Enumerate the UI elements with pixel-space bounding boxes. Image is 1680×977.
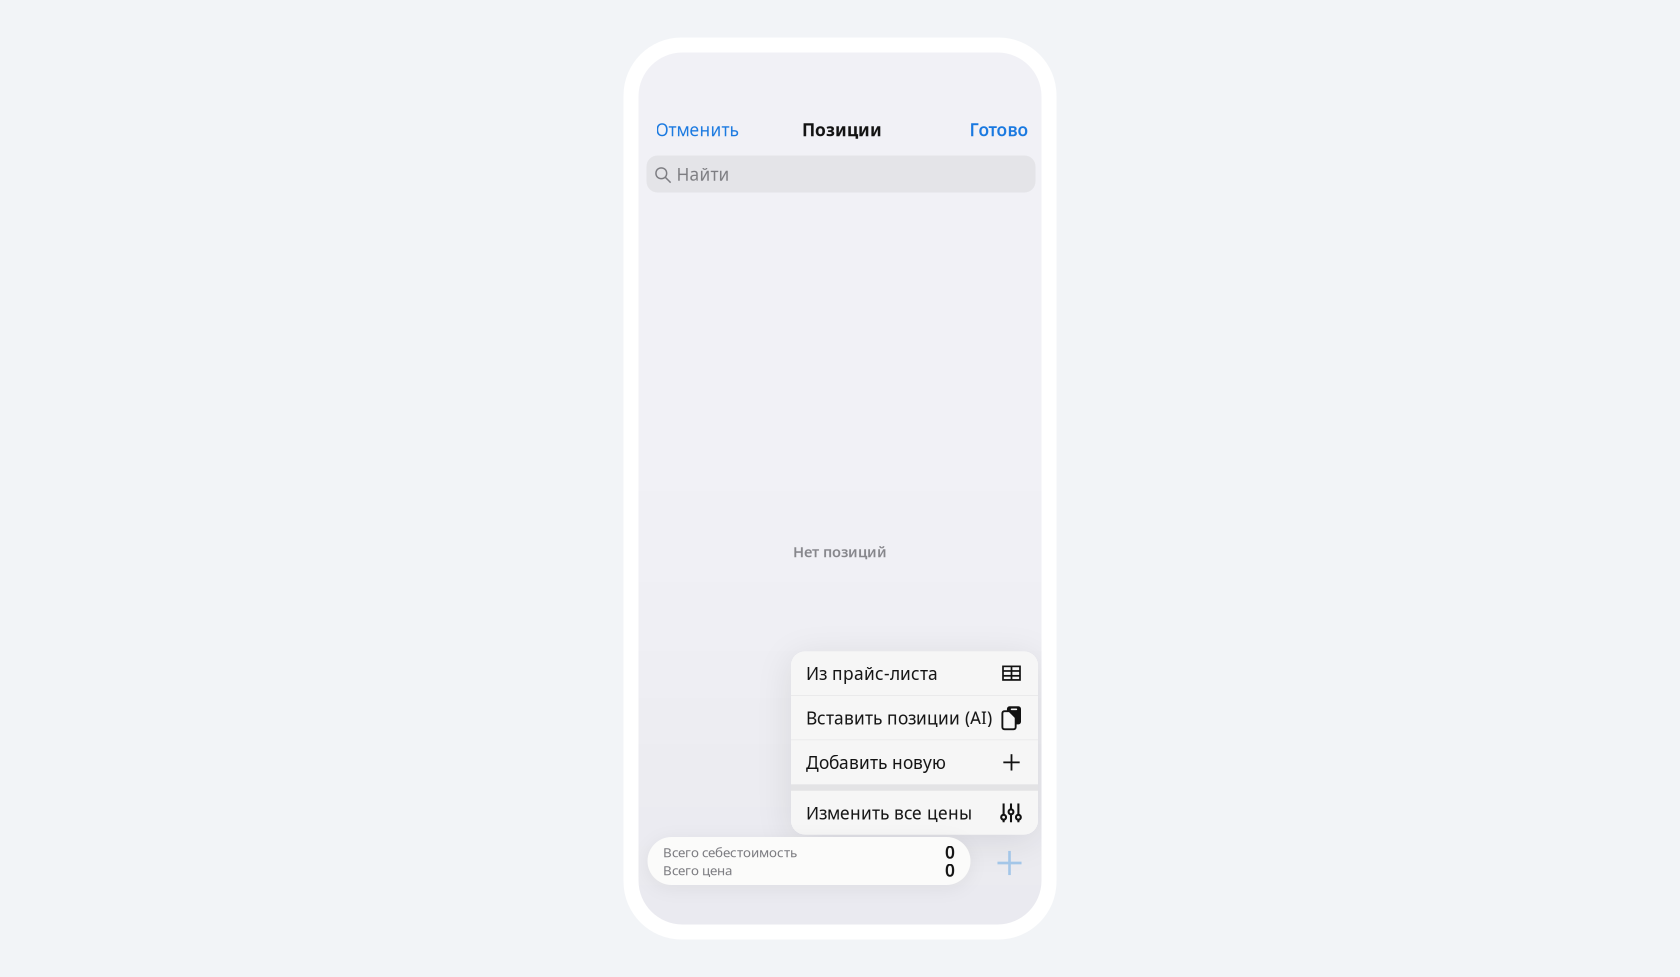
staticText: 0 <box>945 858 955 881</box>
button[interactable]: Добавить новую <box>791 740 1038 784</box>
staticText: Добавить новую <box>806 751 946 774</box>
staticText: Позиции <box>802 118 882 141</box>
staticText: Изменить все цены <box>806 801 972 824</box>
staticText: Нет позиций <box>793 542 887 561</box>
button[interactable]: Вставить позиции (AI) <box>791 696 1038 740</box>
button[interactable]: Отменить <box>653 109 740 150</box>
button[interactable]: Готово <box>967 109 1030 150</box>
staticText: Готово <box>969 118 1028 141</box>
staticText: Из прайс-листа <box>806 662 938 685</box>
button[interactable]: Изменить все цены <box>791 791 1038 835</box>
button[interactable]: Из прайс-листа <box>791 651 1038 695</box>
staticText: 0 <box>945 840 955 863</box>
button[interactable]: Add <box>985 838 1033 888</box>
staticText: Всего цена <box>663 861 732 879</box>
staticText: Найти <box>676 162 729 185</box>
staticText: Отменить <box>655 118 738 141</box>
staticText: Вставить позиции (AI) <box>806 706 992 729</box>
staticText: Всего себестоимость <box>663 843 797 861</box>
